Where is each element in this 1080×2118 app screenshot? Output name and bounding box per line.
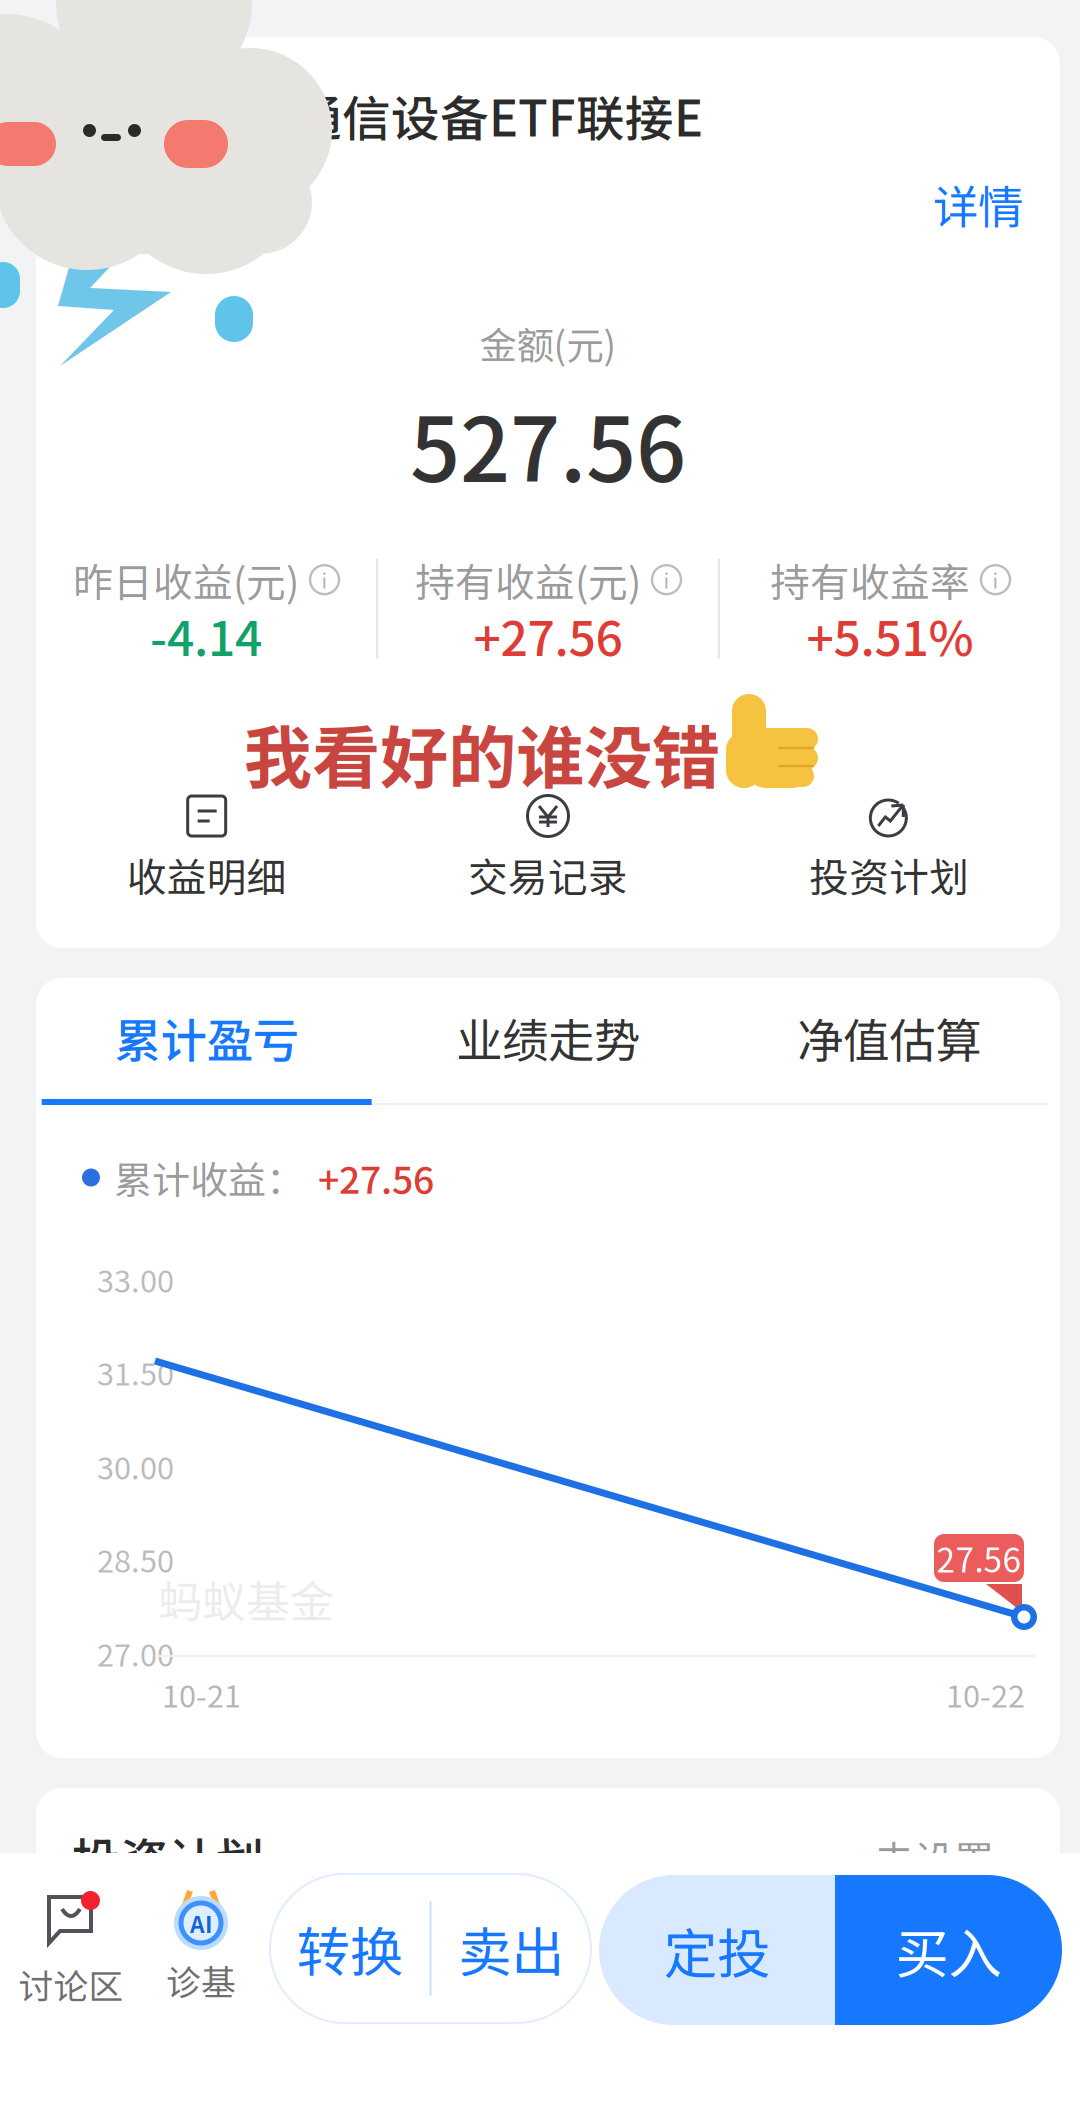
button[interactable]: 净值估算 xyxy=(719,1005,1060,1105)
staticText: 定投 xyxy=(664,1911,770,1989)
button[interactable]: 累计盈亏 xyxy=(36,1005,377,1105)
staticText: 我看好的谁没错 xyxy=(244,704,720,802)
button[interactable]: 详情 xyxy=(915,159,1041,249)
staticText: -4.14 xyxy=(150,600,262,670)
staticText: 买入 xyxy=(895,1911,1001,1989)
staticText: 10-22 xyxy=(946,1672,1025,1716)
staticText: 收益明细 xyxy=(127,846,287,903)
staticText: 卖出 xyxy=(458,1910,564,1987)
staticText: 31.50 xyxy=(97,1350,174,1394)
staticText: 30.00 xyxy=(97,1444,174,1488)
staticText: 投资计划 xyxy=(809,846,969,903)
button[interactable]: 卖出 xyxy=(431,1874,591,2023)
staticText: +27.56 xyxy=(318,1150,434,1205)
button[interactable]: 定投 xyxy=(599,1875,835,2025)
staticText: 28.50 xyxy=(97,1537,174,1581)
button[interactable]: 投资计划 xyxy=(719,791,1060,907)
staticText: i xyxy=(321,565,327,594)
button[interactable]: 买入 xyxy=(835,1875,1062,2025)
staticText: 讨论区 xyxy=(18,1959,123,2009)
staticText: 投资计划 xyxy=(72,1823,264,1892)
staticText: 累计收益： xyxy=(114,1150,304,1205)
staticText: 持有收益(元) xyxy=(415,551,641,608)
staticText: 527.56 xyxy=(410,380,686,507)
button[interactable]: 交易记录 xyxy=(377,791,719,907)
staticText: 33.00 xyxy=(97,1257,174,1301)
staticText: 转换 xyxy=(297,1910,403,1987)
staticText: AI xyxy=(190,1907,212,1939)
staticText: i xyxy=(663,565,669,594)
button[interactable]: 转换 xyxy=(270,1874,429,2023)
button[interactable]: 讨论区 xyxy=(8,1893,134,2009)
button[interactable]: 业绩走势 xyxy=(377,1005,719,1105)
staticText: +27.56 xyxy=(473,600,622,670)
staticText: 交易记录 xyxy=(468,846,628,903)
staticText: › xyxy=(994,1829,1024,1887)
staticText: 27.00 xyxy=(97,1631,174,1675)
staticText: 中证500指通信设备ETF联接E xyxy=(62,80,703,150)
staticText: 详情 xyxy=(933,171,1023,237)
staticText: 持有收益率 xyxy=(770,551,970,608)
staticText: i xyxy=(992,565,998,594)
staticText: 金额(元) xyxy=(479,316,616,370)
staticText: 27.56 xyxy=(936,1534,1021,1582)
staticText: +5.51% xyxy=(806,600,973,670)
staticText: 诊基 xyxy=(166,1955,236,2005)
staticText: 去设置 xyxy=(874,1829,994,1887)
staticText: 净值估算 xyxy=(797,1004,981,1071)
staticText: 10-21 xyxy=(162,1672,241,1716)
button[interactable]: AI xyxy=(138,1887,264,2005)
staticText: 累计盈亏 xyxy=(115,1004,299,1071)
staticText: 昨日收益(元) xyxy=(73,551,299,608)
staticText: 业绩走势 xyxy=(456,1004,640,1071)
staticText: 蚂蚁基金 xyxy=(158,1567,334,1631)
button[interactable]: 收益明细 xyxy=(36,791,377,907)
